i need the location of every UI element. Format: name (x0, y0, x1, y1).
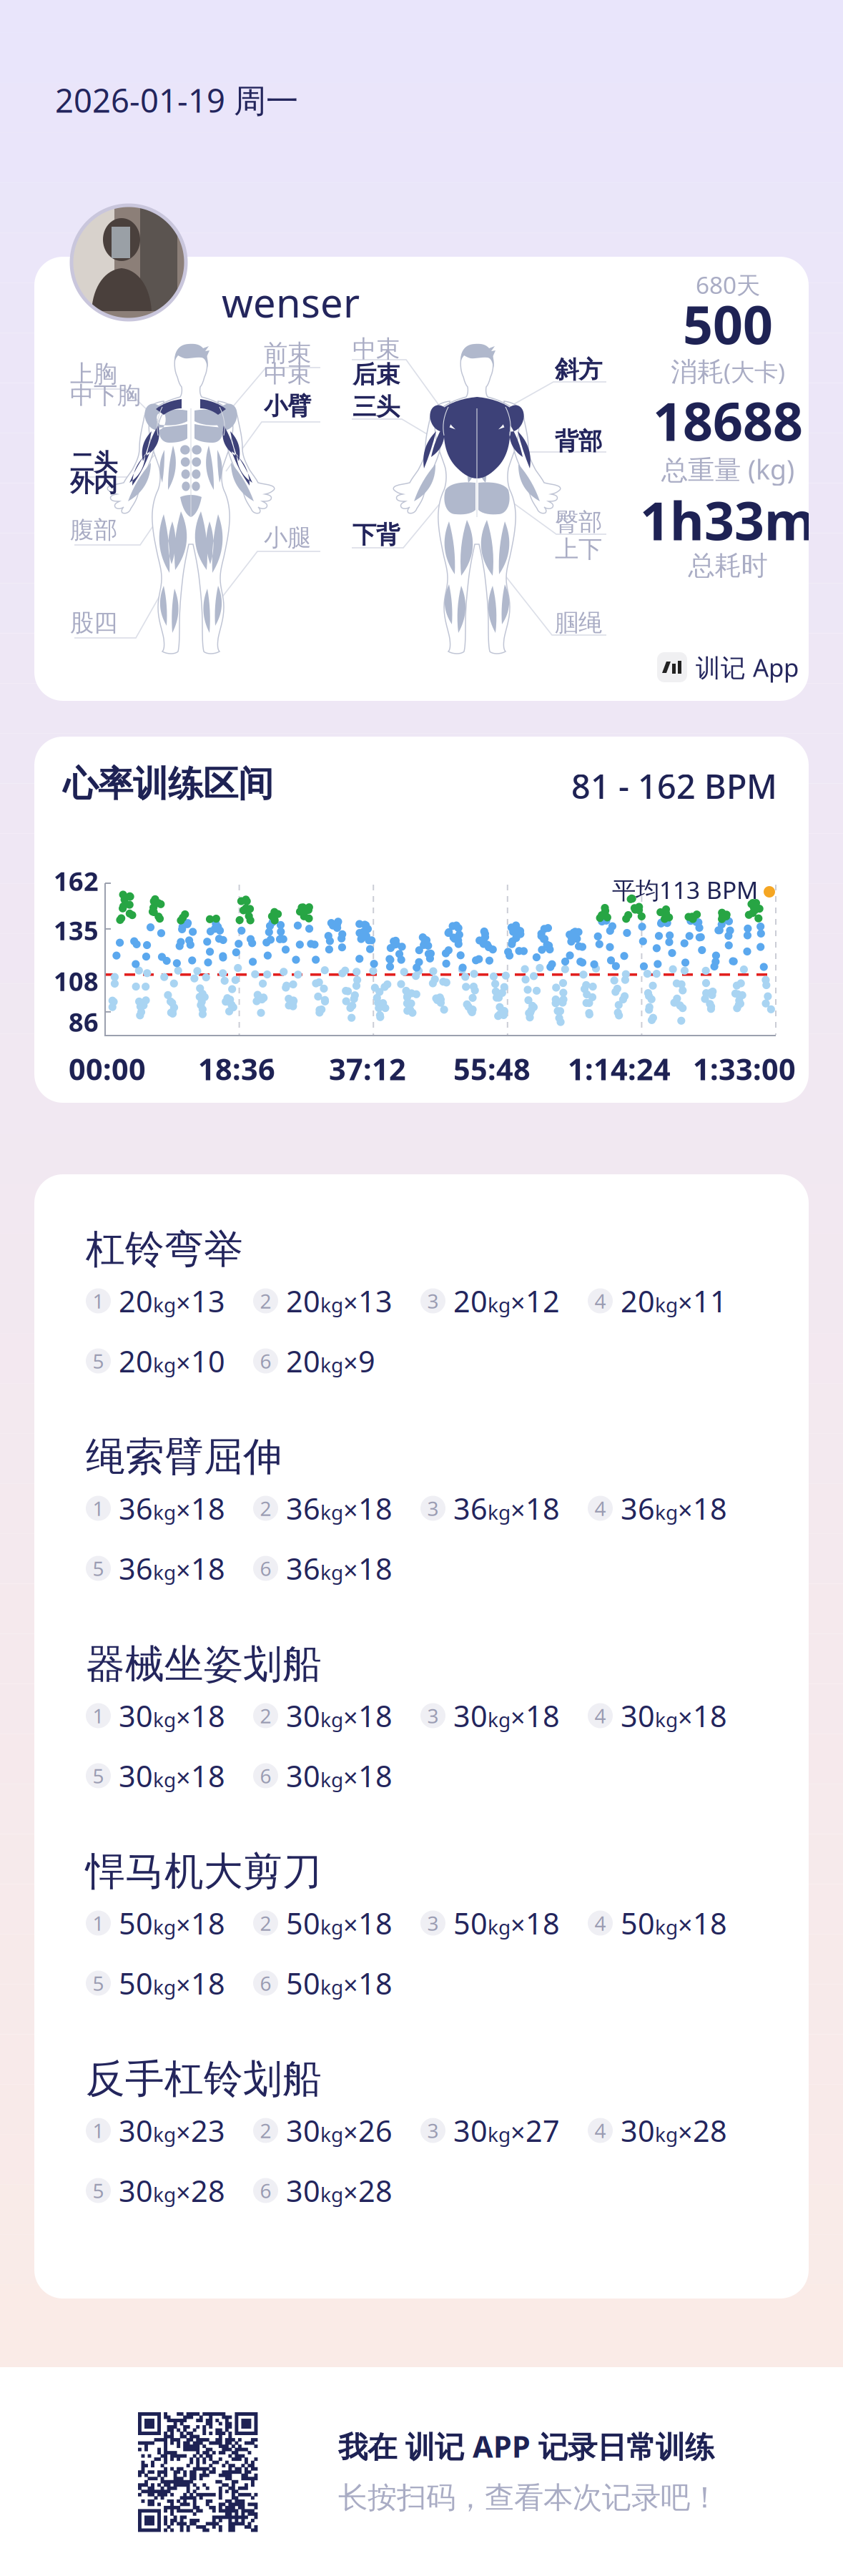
staticText: × (176, 2175, 191, 2209)
staticText: 30 (286, 2171, 320, 2210)
staticText: 长按扫码，查看本次记录吧！ (338, 2480, 719, 2516)
staticText: 50 (119, 1903, 153, 1943)
staticText: × (511, 1907, 526, 1942)
staticText: 18 (191, 1903, 225, 1943)
staticText: × (343, 1345, 358, 1380)
staticText: 2 (260, 1910, 271, 1936)
staticText: 我在 训记 APP 记录日常训练 (338, 2427, 714, 2466)
staticText: 28 (191, 2171, 225, 2210)
staticText: 18 (191, 1549, 225, 1588)
staticText: 28 (693, 2111, 727, 2150)
staticText: 30 (621, 1696, 655, 1735)
staticText: 36 (286, 1549, 320, 1588)
staticText: 小臂 (264, 392, 311, 421)
staticText: 135 (54, 913, 99, 947)
staticText: kg (320, 1351, 343, 1378)
staticText: 3 (427, 1702, 439, 1729)
staticText: 3 (427, 1910, 439, 1936)
staticText: 20 (286, 1341, 320, 1381)
staticText: kg (655, 1706, 678, 1733)
staticText: × (678, 1493, 693, 1527)
staticText: × (176, 1553, 191, 1587)
staticText: × (343, 2175, 358, 2209)
staticText: kg (153, 1291, 176, 1318)
staticText: 18 (358, 1549, 393, 1588)
staticText: 162 (54, 864, 99, 898)
staticText: 20 (621, 1281, 655, 1321)
staticText: kg (320, 1559, 343, 1585)
staticText: 30 (621, 2111, 655, 2150)
staticText: 5 (93, 1348, 104, 1374)
staticText: kg (153, 1706, 176, 1733)
staticText: 上下 (555, 535, 602, 564)
staticText: 50 (453, 1903, 488, 1943)
staticText: 4 (595, 2117, 606, 2144)
staticText: 36 (621, 1489, 655, 1528)
staticText: 总耗时 (688, 549, 768, 582)
staticText: kg (320, 1291, 343, 1318)
staticText: 680天 (696, 269, 760, 301)
staticText: 30 (119, 2171, 153, 2210)
staticText: 2 (260, 1702, 271, 1729)
staticText: 斜方 (555, 355, 602, 384)
staticText: kg (488, 1499, 511, 1525)
staticText: × (343, 1553, 358, 1587)
staticText: kg (153, 1766, 176, 1793)
staticText: 5 (93, 1970, 104, 1996)
staticText: 心率训练区间 (63, 762, 273, 806)
staticText: 36 (453, 1489, 488, 1528)
staticText: 81 - 162 BPM (571, 764, 777, 808)
staticText: kg (320, 1913, 343, 1940)
staticText: × (343, 1700, 358, 1734)
staticText: 20 (119, 1341, 153, 1381)
staticText: (大卡) (724, 356, 785, 387)
staticText: 37:12 (329, 1049, 406, 1088)
staticText: kg (153, 2181, 176, 2208)
staticText: kg (488, 2121, 511, 2147)
staticText: 1h33m (640, 485, 816, 555)
staticText: 外内 (70, 469, 117, 498)
staticText: kg (320, 1974, 343, 2000)
staticText: × (176, 1700, 191, 1734)
staticText: kg (655, 1913, 678, 1940)
staticText: 36 (119, 1489, 153, 1528)
staticText: kg (320, 1766, 343, 1793)
staticText: 500 (683, 289, 773, 359)
staticText: wenser (222, 275, 360, 329)
staticText: 13 (191, 1281, 225, 1321)
staticText: kg (488, 1291, 511, 1318)
staticText: 消耗 (671, 356, 724, 388)
staticText: 6 (260, 1555, 271, 1582)
staticText: 18 (191, 1489, 225, 1528)
staticText: 1 (93, 1288, 104, 1314)
staticText: 1 (93, 1495, 104, 1522)
staticText: 腘绳 (555, 608, 602, 637)
staticText: 27 (526, 2111, 560, 2150)
staticText: × (678, 1700, 693, 1734)
staticText: × (511, 1493, 526, 1527)
staticText: 18 (358, 1964, 393, 2003)
staticText: 18 (358, 1489, 393, 1528)
staticText: 12 (526, 1281, 560, 1321)
staticText: 2 (260, 1288, 271, 1314)
staticText: kg (655, 1291, 678, 1318)
staticText: × (176, 1493, 191, 1527)
staticText: kg (320, 2181, 343, 2208)
staticText: 4 (595, 1702, 606, 1729)
staticText: 18 (191, 1696, 225, 1735)
staticText: 30 (119, 1756, 153, 1795)
staticText: 1:14:24 (568, 1049, 671, 1088)
staticText: 86 (69, 1005, 99, 1039)
staticText: 26 (358, 2111, 393, 2150)
staticText: 18 (526, 1489, 560, 1528)
staticText: 36 (119, 1549, 153, 1588)
staticText: 反手杠铃划船 (86, 2055, 322, 2103)
staticText: kg (153, 1351, 176, 1378)
staticText: 55:48 (453, 1049, 531, 1088)
staticText: kg (488, 1706, 511, 1733)
staticText: 18 (358, 1903, 393, 1943)
staticText: × (343, 1493, 358, 1527)
staticText: × (343, 1968, 358, 2002)
staticText: × (678, 2115, 693, 2149)
staticText: 6 (260, 1970, 271, 1996)
